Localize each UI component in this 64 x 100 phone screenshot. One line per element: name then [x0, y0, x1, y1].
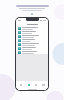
button[interactable]: Activity [32, 81, 39, 88]
button[interactable]: Home [17, 81, 24, 88]
button[interactable]: Open item [16, 46, 48, 50]
button[interactable]: Explore [25, 81, 32, 88]
button[interactable]: Open item [16, 50, 48, 54]
button[interactable]: Open item [16, 42, 48, 46]
button[interactable]: Profile [40, 81, 47, 88]
button[interactable]: Open item [16, 30, 48, 34]
button[interactable]: Open item [16, 26, 48, 30]
button[interactable]: Open item [16, 38, 48, 42]
button[interactable]: Open item [16, 34, 48, 38]
